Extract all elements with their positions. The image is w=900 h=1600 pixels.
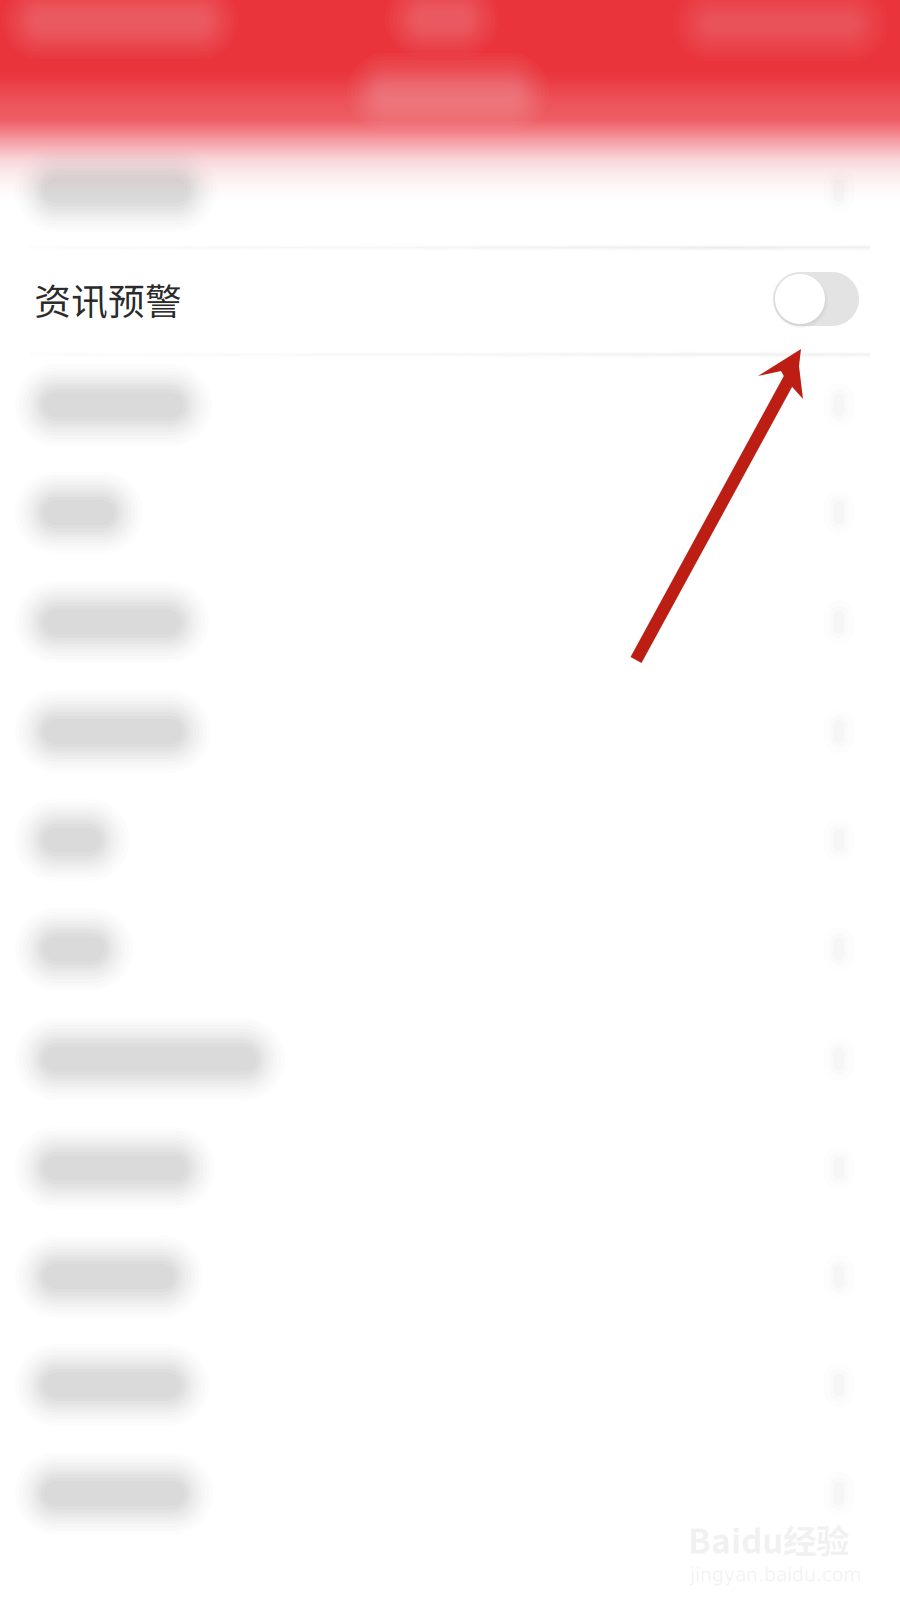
button[interactable]: Setting [0, 677, 900, 786]
staticText: Baidu经验 [688, 1515, 849, 1563]
button[interactable]: Setting [0, 786, 900, 894]
button[interactable]: Setting [0, 567, 900, 677]
staticText: 资讯预警 [34, 272, 182, 326]
button[interactable]: Setting [0, 458, 900, 567]
staticText: jingyan.baidu.com [690, 1564, 861, 1586]
button[interactable]: Setting [0, 1004, 900, 1114]
button[interactable]: 资讯预警 [0, 246, 900, 352]
button[interactable]: Setting [0, 352, 900, 458]
button[interactable]: Setting [0, 1222, 900, 1331]
button[interactable]: Setting [0, 135, 900, 246]
button[interactable]: Setting [0, 1114, 900, 1222]
button[interactable]: Setting [0, 894, 900, 1004]
button[interactable]: Setting [0, 1439, 900, 1548]
button[interactable]: Setting [0, 1331, 900, 1439]
